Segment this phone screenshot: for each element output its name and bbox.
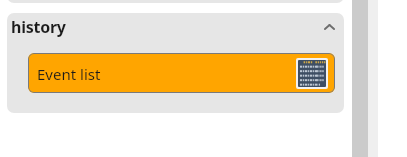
button[interactable]: history <box>7 13 344 41</box>
staticText: history <box>11 16 66 38</box>
staticText: Event list <box>37 64 101 84</box>
button[interactable]: Collapse history section <box>315 13 343 41</box>
button[interactable]: Event list <box>28 53 335 93</box>
